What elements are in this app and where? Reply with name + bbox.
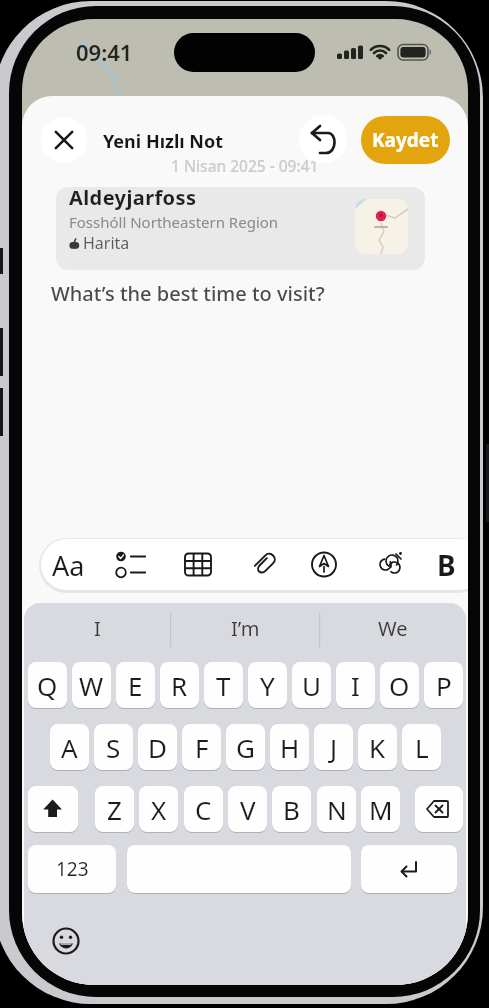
button[interactable]: Z — [95, 786, 134, 832]
button[interactable]: E — [116, 662, 155, 708]
button[interactable]: P — [424, 662, 463, 708]
staticText: V — [240, 792, 256, 827]
button[interactable]: J — [314, 724, 353, 770]
button[interactable]: O — [380, 662, 419, 708]
staticText: What’s the best time to visit? — [51, 280, 325, 307]
button[interactable]: C — [184, 786, 223, 832]
button[interactable]: M — [361, 786, 400, 832]
staticText: W — [79, 668, 104, 703]
staticText: B — [283, 792, 300, 827]
staticText: H — [280, 730, 300, 765]
button[interactable]: T — [204, 662, 243, 708]
button[interactable] — [109, 542, 153, 587]
staticText: 123 — [56, 856, 89, 882]
staticText: F — [195, 730, 209, 765]
staticText: M — [369, 792, 393, 827]
staticText: G — [236, 730, 255, 765]
staticText: We — [378, 615, 408, 642]
staticText: Aa — [52, 547, 85, 584]
button[interactable] — [361, 845, 457, 893]
button[interactable]: D — [138, 724, 177, 770]
button[interactable]: H — [270, 724, 309, 770]
staticText: O — [389, 668, 410, 703]
button[interactable]: I’m — [171, 615, 319, 642]
button[interactable]: N — [317, 786, 356, 832]
staticText: Y — [260, 668, 275, 703]
button[interactable] — [425, 542, 468, 587]
staticText: D — [148, 730, 167, 765]
button[interactable]: L — [402, 724, 441, 770]
staticText: I — [94, 615, 101, 642]
staticText: A — [61, 730, 78, 765]
button[interactable]: X — [139, 786, 178, 832]
staticText: N — [327, 792, 347, 827]
staticText: L — [415, 730, 429, 765]
button[interactable]: I — [336, 662, 375, 708]
button[interactable]: R — [160, 662, 199, 708]
staticText: T — [216, 668, 231, 703]
button[interactable]: V — [228, 786, 267, 832]
staticText: Q — [37, 668, 58, 703]
button[interactable]: A — [50, 724, 89, 770]
button[interactable]: K — [358, 724, 397, 770]
staticText: E — [128, 668, 143, 703]
staticText: U — [302, 668, 322, 703]
button[interactable] — [368, 542, 412, 587]
staticText: R — [171, 668, 188, 703]
button[interactable]: S — [94, 724, 133, 770]
button[interactable]: B — [272, 786, 311, 832]
staticText: B — [437, 546, 456, 584]
staticText: X — [151, 792, 167, 827]
button[interactable] — [415, 786, 463, 832]
button[interactable]: Aldeyjarfoss — [56, 187, 425, 270]
button[interactable]: U — [292, 662, 331, 708]
button[interactable]: F — [182, 724, 221, 770]
button[interactable] — [48, 923, 84, 959]
button[interactable] — [176, 542, 220, 587]
button[interactable]: G — [226, 724, 265, 770]
staticText: Fosshóll Northeastern Region — [69, 212, 279, 232]
staticText: K — [369, 730, 386, 765]
staticText: J — [330, 730, 338, 765]
button[interactable]: I — [24, 615, 171, 642]
button[interactable] — [127, 845, 351, 893]
staticText: C — [195, 792, 212, 827]
button[interactable] — [299, 115, 347, 163]
button[interactable] — [302, 542, 346, 587]
button[interactable]: Kaydet — [361, 116, 450, 164]
staticText: Yeni Hızlı Not — [103, 129, 224, 154]
staticText: Z — [107, 792, 122, 827]
staticText: I’m — [231, 615, 260, 642]
staticText: I — [351, 668, 360, 703]
button[interactable] — [28, 786, 78, 832]
button[interactable] — [242, 542, 286, 587]
staticText: Kaydet — [372, 127, 439, 153]
staticText: 1 Nisan 2025 - 09:41 — [171, 155, 319, 176]
staticText: S — [106, 730, 121, 765]
staticText: Harita — [83, 232, 130, 254]
staticText: 09:41 — [76, 37, 133, 67]
button[interactable]: Y — [248, 662, 287, 708]
button[interactable]: Q — [28, 662, 67, 708]
button[interactable]: We — [319, 615, 466, 642]
button[interactable] — [41, 117, 87, 163]
button[interactable]: W — [72, 662, 111, 708]
button[interactable]: 123 — [28, 845, 116, 893]
staticText: P — [436, 668, 452, 703]
button[interactable] — [46, 542, 90, 587]
staticText: Aldeyjarfoss — [69, 187, 197, 211]
